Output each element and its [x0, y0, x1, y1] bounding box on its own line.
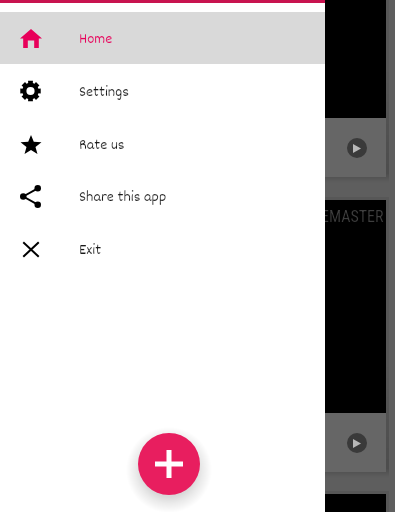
button[interactable]: Home	[0, 12, 325, 64]
button[interactable]: Exit	[0, 220, 325, 272]
button[interactable]: Add	[138, 433, 200, 495]
staticText: Home	[79, 28, 113, 51]
button[interactable]: Rate us	[0, 116, 325, 168]
staticText: Rate us	[79, 134, 125, 157]
staticText: Settings	[79, 81, 129, 104]
button[interactable]	[9, 0, 386, 177]
staticText: Exit	[79, 239, 102, 262]
staticText: CINEMASTER	[298, 207, 384, 226]
button[interactable]: Share this app	[0, 168, 325, 220]
button[interactable]	[9, 494, 386, 512]
staticText: Share this app	[79, 186, 167, 209]
button[interactable]: CINEMASTER	[9, 200, 386, 472]
button[interactable]: Settings	[0, 64, 325, 116]
